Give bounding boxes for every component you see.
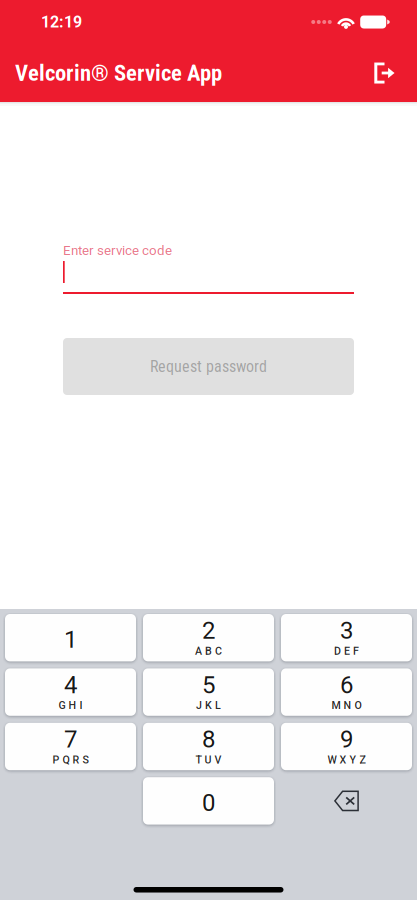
button[interactable]: 0: [143, 777, 274, 825]
button[interactable]: 9: [281, 723, 412, 770]
staticText: 5: [202, 671, 215, 699]
staticText: J K L: [196, 699, 221, 712]
staticText: 9: [340, 725, 353, 753]
staticText: 3: [340, 616, 353, 645]
button[interactable]: 8: [143, 723, 274, 770]
staticText: G H I: [58, 699, 82, 712]
button[interactable]: 2: [143, 614, 274, 661]
staticText: Enter service code: [63, 243, 172, 258]
button[interactable]: 7: [5, 723, 136, 770]
staticText: D E F: [334, 645, 359, 657]
staticText: 12:19: [41, 13, 82, 31]
staticText: Velcorin® Service App: [15, 60, 222, 86]
button[interactable]: 5: [143, 668, 274, 716]
staticText: 2: [202, 616, 215, 645]
staticText: T U V: [195, 754, 221, 766]
button[interactable]: Log out: [362, 51, 406, 95]
staticText: M N O: [331, 699, 361, 712]
staticText: Request password: [150, 357, 267, 376]
staticText: 1: [64, 625, 77, 654]
button[interactable]: Delete: [281, 777, 412, 825]
button[interactable]: 1: [5, 614, 136, 661]
staticText: 7: [64, 725, 77, 753]
button[interactable]: 4: [5, 668, 136, 716]
staticText: 8: [202, 725, 215, 753]
staticText: 0: [202, 789, 215, 817]
staticText: 6: [340, 671, 353, 699]
button[interactable]: 3: [281, 614, 412, 661]
staticText: A B C: [195, 645, 222, 657]
button[interactable]: 6: [281, 668, 412, 716]
button[interactable]: Request password: [63, 338, 354, 395]
staticText: W X Y Z: [327, 754, 365, 766]
staticText: 4: [64, 671, 77, 699]
staticText: P Q R S: [52, 754, 88, 766]
